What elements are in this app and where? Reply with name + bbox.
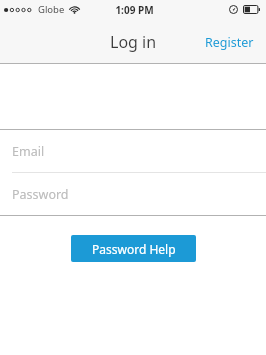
- staticText: Log in: [110, 31, 157, 53]
- staticText: Password Help: [92, 241, 176, 257]
- button[interactable]: Password input field: [0, 173, 266, 215]
- button[interactable]: Email input field: [0, 130, 266, 172]
- staticText: Globe: [38, 3, 65, 16]
- staticText: Password: [12, 186, 69, 203]
- staticText: 1:09 PM: [115, 3, 154, 17]
- button[interactable]: Password Help: [71, 235, 196, 262]
- staticText: Register: [205, 34, 254, 51]
- staticText: Email: [12, 143, 45, 160]
- button[interactable]: Register: [193, 28, 266, 57]
